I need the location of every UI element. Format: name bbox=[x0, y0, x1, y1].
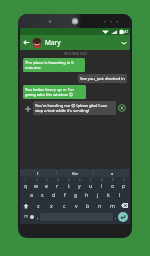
staticText: The plane is boarding in 5 minutes. bbox=[25, 60, 83, 70]
button[interactable]: h bbox=[81, 189, 92, 200]
button[interactable]: d bbox=[48, 189, 59, 200]
button[interactable]: g bbox=[70, 189, 81, 200]
button[interactable]: Cancel sending bbox=[117, 103, 127, 113]
button[interactable]: Send bbox=[118, 212, 128, 222]
staticText: , bbox=[37, 214, 39, 220]
staticText: I bbox=[37, 171, 39, 176]
staticText: m bbox=[110, 202, 115, 209]
button[interactable]: Back bbox=[20, 35, 32, 50]
button[interactable]: Backspace bbox=[118, 200, 130, 211]
button[interactable]: 7 bbox=[85, 178, 96, 189]
staticText: b bbox=[86, 202, 90, 209]
button[interactable]: j bbox=[92, 189, 103, 200]
staticText: 8 bbox=[101, 178, 103, 182]
button[interactable]: Expand bbox=[118, 35, 130, 50]
staticText: ?1 bbox=[24, 214, 29, 220]
staticText: i bbox=[101, 182, 103, 189]
staticText: a bbox=[111, 171, 114, 176]
staticText: v bbox=[75, 202, 78, 209]
button[interactable]: Shift bbox=[20, 200, 32, 211]
button[interactable]: 6 bbox=[74, 178, 85, 189]
button[interactable]: 0 bbox=[118, 178, 129, 189]
button[interactable]: 8 bbox=[96, 178, 107, 189]
button[interactable]: c bbox=[58, 200, 70, 211]
staticText: k bbox=[107, 191, 110, 198]
staticText: s bbox=[41, 191, 44, 198]
staticText: a bbox=[30, 191, 33, 198]
staticText: n bbox=[98, 202, 102, 209]
button[interactable]: You're hassling me 😠 (phew glad I can st… bbox=[35, 103, 114, 113]
staticText: j bbox=[97, 191, 99, 198]
staticText: the bbox=[72, 171, 79, 176]
button[interactable]: The plane is boarding in 5 minutes. bbox=[25, 60, 83, 70]
staticText: g bbox=[74, 191, 78, 198]
button[interactable]: x bbox=[45, 200, 58, 211]
button[interactable]: v bbox=[70, 200, 82, 211]
staticText: Mary bbox=[45, 38, 61, 47]
staticText: u bbox=[89, 182, 93, 189]
button[interactable]: f bbox=[59, 189, 70, 200]
button[interactable]: You better hurry up or I'm going take th… bbox=[25, 87, 84, 97]
staticText: o bbox=[111, 182, 115, 189]
button[interactable]: Back bbox=[20, 35, 130, 50]
staticText: You better hurry up or I'm going take th… bbox=[25, 87, 84, 97]
button[interactable]: 9 bbox=[107, 178, 118, 189]
button[interactable]: a bbox=[25, 189, 37, 200]
staticText: x bbox=[50, 202, 53, 209]
button[interactable]: s bbox=[37, 189, 48, 200]
button[interactable]: b bbox=[82, 200, 94, 211]
staticText: 16:41 bbox=[120, 30, 129, 34]
staticText: 7 bbox=[90, 178, 92, 182]
staticText: h bbox=[85, 191, 89, 198]
staticText: t bbox=[68, 182, 70, 189]
button[interactable]: the bbox=[57, 169, 93, 177]
button[interactable]: 3 bbox=[41, 178, 52, 189]
staticText: 6 bbox=[79, 178, 81, 182]
staticText: p bbox=[122, 182, 126, 189]
staticText: 4 bbox=[57, 178, 59, 182]
staticText: 0 bbox=[123, 178, 125, 182]
staticText: 9 bbox=[112, 178, 114, 182]
button[interactable]: m bbox=[106, 200, 118, 211]
staticText: c bbox=[63, 202, 66, 209]
button[interactable]: ?1 bbox=[22, 212, 35, 222]
button[interactable]: I bbox=[20, 169, 56, 177]
staticText: y bbox=[78, 182, 81, 189]
staticText: You're hassling me 😠 (phew glad I can st… bbox=[35, 103, 114, 113]
staticText: w bbox=[34, 182, 39, 189]
staticText: 3 bbox=[46, 178, 48, 182]
staticText: 2 bbox=[36, 178, 38, 182]
button[interactable]: See you, just checked in bbox=[80, 76, 125, 81]
button[interactable]: a bbox=[94, 169, 130, 177]
staticText: f bbox=[64, 191, 66, 198]
staticText: r bbox=[56, 182, 59, 189]
button[interactable]: 1 bbox=[21, 178, 31, 189]
staticText: . bbox=[115, 214, 117, 220]
staticText: e bbox=[45, 182, 48, 189]
button[interactable]: z bbox=[32, 200, 45, 211]
button[interactable]: l bbox=[114, 189, 125, 200]
staticText: z bbox=[37, 202, 40, 209]
staticText: 1 bbox=[25, 178, 27, 182]
button[interactable]: , bbox=[35, 212, 40, 222]
button[interactable]: k bbox=[103, 189, 114, 200]
button[interactable]: 5 bbox=[63, 178, 74, 189]
staticText: 18/11/2016 15:37 bbox=[64, 52, 87, 56]
staticText: 5 bbox=[68, 178, 70, 182]
staticText: q bbox=[24, 182, 28, 189]
staticText: d bbox=[52, 191, 56, 198]
staticText: See you, just checked in bbox=[80, 76, 125, 81]
button[interactable]: 4 bbox=[52, 178, 63, 189]
button[interactable]: . bbox=[113, 212, 118, 222]
button[interactable]: n bbox=[94, 200, 106, 211]
staticText: l bbox=[119, 191, 121, 198]
button[interactable]: Attach bbox=[23, 104, 32, 113]
button[interactable]: 2 bbox=[31, 178, 41, 189]
